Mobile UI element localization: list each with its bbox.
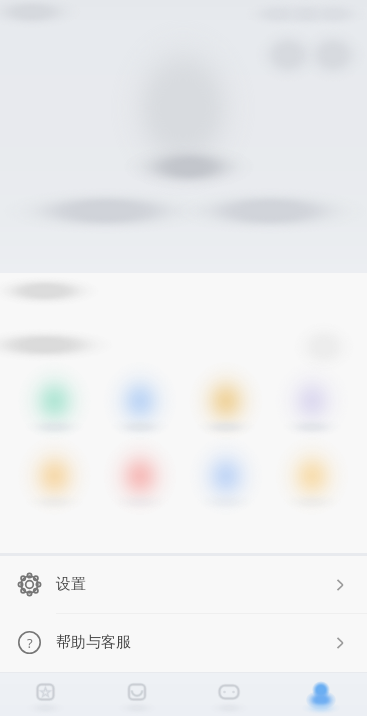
button[interactable]	[97, 377, 183, 449]
button[interactable]	[269, 452, 355, 524]
staticText: ?	[27, 634, 33, 652]
button[interactable]	[269, 377, 355, 449]
button[interactable]: 游戏	[183, 673, 275, 716]
button[interactable]: 购物车	[91, 673, 183, 716]
button[interactable]: 首页	[0, 673, 91, 716]
button[interactable]	[97, 452, 183, 524]
button[interactable]	[183, 377, 269, 449]
button[interactable]: 我的	[275, 673, 367, 716]
staticText: 帮助与客服	[56, 633, 131, 652]
button[interactable]: 设置	[0, 556, 367, 613]
button[interactable]: ?	[0, 614, 367, 671]
button[interactable]	[183, 452, 269, 524]
staticText: 设置	[56, 575, 86, 594]
button[interactable]	[12, 377, 97, 449]
button[interactable]	[12, 452, 97, 524]
